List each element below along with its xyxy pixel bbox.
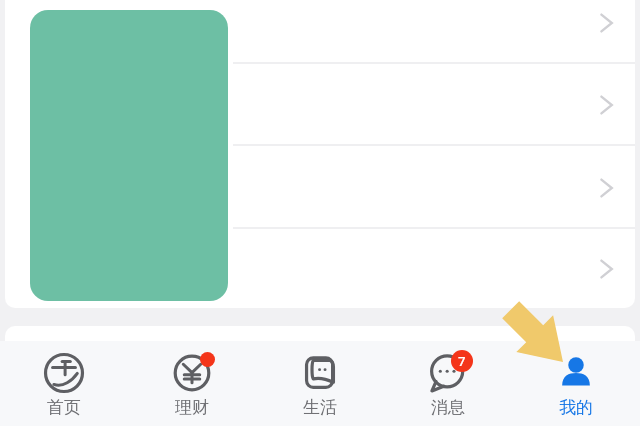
staticText: 7 <box>458 352 466 370</box>
button[interactable]: 理财 <box>128 341 256 418</box>
button[interactable]: 消息 <box>384 341 512 418</box>
button[interactable] <box>233 228 635 308</box>
button[interactable] <box>233 64 635 146</box>
button[interactable]: 我的 <box>512 341 640 418</box>
staticText: 首页 <box>47 397 81 418</box>
button[interactable]: 生活 <box>256 341 384 418</box>
staticText: 理财 <box>175 397 209 418</box>
button[interactable] <box>233 147 635 229</box>
button[interactable] <box>233 0 635 64</box>
button[interactable]: 首页 <box>0 341 128 418</box>
staticText: 生活 <box>303 397 337 418</box>
staticText: 我的 <box>559 397 593 418</box>
staticText: 消息 <box>431 397 465 418</box>
